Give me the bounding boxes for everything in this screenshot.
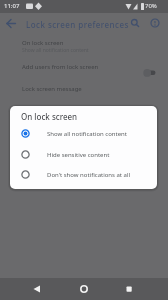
staticText: Hide sensitive content [47, 151, 110, 159]
staticText: 70% [145, 2, 157, 10]
button[interactable] [121, 281, 137, 297]
button[interactable]: Show all notification content [10, 123, 157, 143]
staticText: Add users from lock screen [22, 63, 99, 71]
staticText: On lock screen [21, 111, 78, 122]
button[interactable] [76, 281, 92, 297]
button[interactable] [129, 15, 143, 29]
button[interactable] [148, 15, 163, 30]
staticText: Show all notification content [47, 130, 127, 138]
staticText: Show all notification content [22, 47, 89, 54]
button[interactable]: Add users from lock screen [0, 58, 168, 80]
staticText: 11:07 [4, 2, 20, 10]
button[interactable]: Don't show notifications at all [10, 164, 157, 184]
button[interactable]: Lock screen message [0, 81, 168, 99]
staticText: Lock screen message [22, 85, 82, 93]
staticText: Lock screen preferences [26, 19, 129, 30]
button[interactable]: Hide sensitive content [10, 144, 157, 164]
staticText: On lock screen [22, 39, 64, 47]
button[interactable] [4, 16, 20, 32]
button[interactable] [28, 281, 44, 297]
button[interactable]: On lock screen [0, 37, 168, 57]
staticText: Don't show notifications at all [47, 171, 131, 179]
